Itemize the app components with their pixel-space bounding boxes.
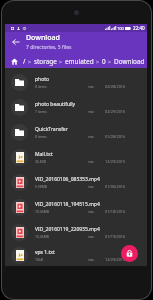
staticText: rwx [88, 134, 94, 139]
button[interactable]: Home [9, 56, 20, 67]
staticText: 8 items [35, 134, 47, 139]
staticText: 0 [102, 57, 106, 66]
staticText: rwx [88, 234, 94, 239]
staticText: 10.45MB [35, 234, 49, 239]
button[interactable]: Download [114, 57, 145, 66]
staticText: > [96, 58, 100, 65]
button[interactable]: QuickTransfer [5, 120, 147, 145]
button[interactable]: Mail.txt [5, 145, 147, 170]
staticText: storage [34, 57, 57, 66]
staticText: 5.98MB [35, 184, 48, 189]
staticText: 10.40MB [35, 209, 49, 214]
staticText: 01/18/2016 [105, 209, 126, 214]
staticText: 01/28/2016 [105, 134, 126, 139]
button[interactable]: Secure folder [121, 245, 138, 262]
staticText: 02/29/2016 [105, 109, 126, 114]
staticText: QuickTransfer [35, 126, 68, 133]
button[interactable]: storage [34, 57, 57, 66]
staticText: photo [35, 76, 50, 83]
button[interactable]: / [23, 57, 26, 66]
staticText: 12/29/2015 [105, 159, 126, 164]
staticText: VID_20160106_085353.mp4 [35, 176, 100, 183]
button[interactable]: photo [5, 70, 147, 95]
button[interactable]: Back [5, 32, 26, 52]
staticText: / [23, 57, 26, 66]
button[interactable]: VID_20160106_085353.mp4 [5, 170, 147, 195]
staticText: VID_20160119_220935.mp4 [35, 226, 100, 233]
staticText: rwx [88, 159, 94, 164]
staticText: photo beautifully [35, 101, 76, 108]
staticText: rwx [88, 209, 94, 214]
staticText: 36.80B [35, 159, 46, 164]
staticText: 01/19/2016 [105, 234, 126, 239]
staticText: > [59, 58, 63, 65]
staticText: 01/06/2016 [105, 184, 126, 189]
staticText: rwx [88, 109, 94, 114]
staticText: vps 1.txt [35, 249, 55, 256]
staticText: Mail.txt [35, 151, 53, 158]
button[interactable]: photo beautifully [5, 95, 147, 120]
staticText: > [108, 58, 112, 65]
staticText: 7 items [35, 109, 47, 114]
staticText: rwx [88, 257, 94, 262]
staticText: 12/29/2015 [105, 257, 126, 262]
staticText: 8 items [35, 84, 47, 89]
staticText: 02/28/2016 [105, 84, 126, 89]
button[interactable]: emulated [65, 57, 94, 66]
staticText: emulated [65, 57, 94, 66]
staticText: 16kB [35, 257, 43, 262]
staticText: > [28, 58, 32, 65]
button[interactable]: vps 1.txt [5, 245, 147, 266]
button[interactable]: VID_20160118_194515.mp4 [5, 195, 147, 220]
staticText: VID_20160118_194515.mp4 [35, 201, 100, 208]
button[interactable]: 0 [102, 57, 106, 66]
staticText: Download [114, 57, 145, 66]
staticText: 100 [117, 26, 124, 31]
staticText: 7 directories, 5 files [26, 44, 72, 51]
button[interactable]: VID_20160119_220935.mp4 [5, 220, 147, 245]
staticText: 22:40 [133, 25, 145, 31]
staticText: rwx [88, 184, 94, 189]
staticText: rwx [88, 84, 94, 89]
staticText: Download [26, 33, 60, 43]
